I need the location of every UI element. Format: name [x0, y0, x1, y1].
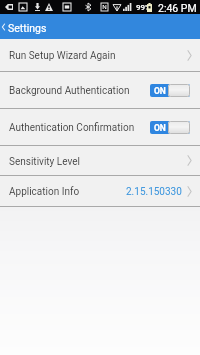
button[interactable]: Background Authentication — [0, 72, 200, 108]
button[interactable]: Run Setup Wizard Again — [0, 39, 200, 71]
staticText: 2:46 PM — [158, 2, 197, 14]
button[interactable]: Sensitivity Level — [0, 146, 200, 175]
staticText: ON — [154, 86, 166, 96]
staticText: Run Setup Wizard Again — [9, 50, 116, 62]
other: Back — [1, 22, 6, 32]
staticText: Sensitivity Level — [9, 156, 80, 168]
staticText: Application Info — [9, 186, 80, 198]
staticText: 99% — [136, 3, 151, 12]
other: Open — [187, 154, 192, 167]
button[interactable]: Back — [0, 14, 200, 39]
staticText: 2.15.150330 — [126, 186, 182, 198]
staticText: Background Authentication — [9, 85, 130, 97]
other: Open — [187, 185, 192, 198]
button[interactable]: Toggle on — [150, 84, 190, 97]
button[interactable]: Application Info — [0, 176, 200, 206]
button[interactable]: Toggle on — [150, 121, 190, 134]
button[interactable]: Authentication Confirmation — [0, 109, 200, 145]
staticText: Authentication Confirmation — [9, 122, 135, 134]
other: Open — [187, 49, 192, 62]
staticText: Settings — [8, 22, 47, 34]
staticText: ON — [154, 123, 166, 133]
